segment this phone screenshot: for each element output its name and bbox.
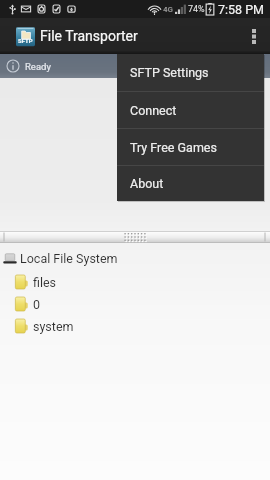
button[interactable]: Local File System: [0, 247, 270, 269]
button[interactable]: Resize panes: [0, 231, 270, 243]
button[interactable]: system: [0, 315, 270, 337]
staticText: system: [33, 319, 74, 334]
button[interactable]: SFTP Settings: [117, 54, 264, 91]
button[interactable]: files: [0, 271, 270, 293]
staticText: 0: [33, 297, 41, 312]
staticText: 4G: [163, 5, 174, 14]
button[interactable]: 0: [0, 293, 270, 315]
staticText: File Transporter: [40, 28, 138, 44]
staticText: Ready: [25, 61, 51, 72]
button[interactable]: More options: [238, 18, 270, 54]
button[interactable]: About: [117, 166, 264, 201]
staticText: 74%: [188, 4, 205, 15]
staticText: SFTP: [18, 37, 33, 44]
staticText: Connect: [130, 103, 177, 118]
staticText: 7:58 PM: [218, 2, 265, 17]
staticText: Try Free Games: [130, 140, 217, 155]
staticText: files: [33, 275, 57, 290]
staticText: Local File System: [20, 251, 118, 266]
staticText: About: [130, 176, 164, 191]
button[interactable]: Connect: [117, 92, 264, 128]
button[interactable]: Try Free Games: [117, 129, 264, 165]
staticText: SFTP Settings: [130, 65, 209, 80]
